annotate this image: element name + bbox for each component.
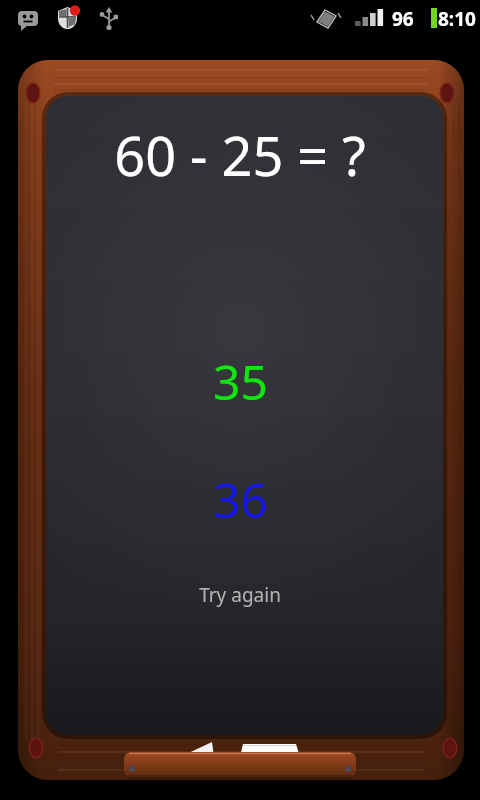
staticText: 96: [392, 6, 414, 32]
button[interactable]: 35: [185, 345, 296, 418]
staticText: 36: [213, 467, 268, 532]
button[interactable]: Try again: [179, 578, 301, 612]
button[interactable]: 36: [185, 463, 296, 536]
staticText: 35: [213, 349, 268, 414]
staticText: 8:10: [438, 6, 476, 32]
staticText: 60 - 25 = ?: [114, 118, 366, 192]
staticText: Try again: [199, 582, 281, 608]
